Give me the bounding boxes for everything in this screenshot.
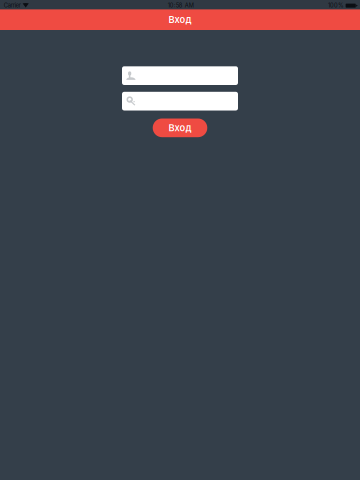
staticText: Вход — [168, 14, 191, 25]
staticText: Вход — [168, 122, 191, 133]
button[interactable]: Вход — [153, 118, 207, 137]
staticText: 100% — [328, 2, 344, 9]
staticText: Carrier — [4, 2, 21, 9]
staticText: 10:58 AM — [168, 2, 194, 9]
button[interactable]: Username — [122, 66, 238, 85]
button[interactable]: Password — [122, 92, 238, 110]
